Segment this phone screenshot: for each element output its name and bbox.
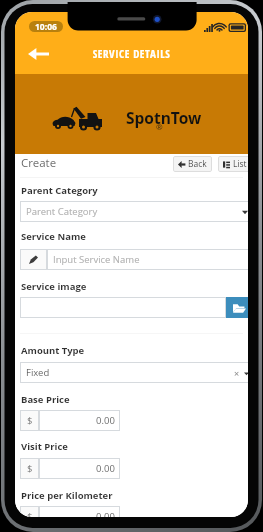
button[interactable]: Back xyxy=(25,41,51,67)
staticText: 0.00 xyxy=(96,510,115,517)
staticText: Parent Category xyxy=(26,205,98,218)
staticText: 0.00 xyxy=(96,414,115,427)
button[interactable]: Fixed xyxy=(20,362,248,383)
button[interactable] xyxy=(20,297,226,318)
staticText: Visit Price xyxy=(21,440,68,453)
staticText: 0.00 xyxy=(96,462,115,475)
staticText: Create xyxy=(21,155,57,171)
staticText: 10:06 xyxy=(35,21,57,32)
button[interactable]: 0.00 xyxy=(39,458,120,479)
staticText: Price per Kilometer xyxy=(21,489,113,502)
staticText: Back xyxy=(188,158,207,170)
button[interactable]: Browse file xyxy=(226,297,248,318)
staticText: SERVICE DETAILS xyxy=(72,46,191,61)
staticText: Amount Type xyxy=(21,344,85,357)
button[interactable]: 0.00 xyxy=(39,410,120,431)
staticText: Parent Category xyxy=(21,184,98,197)
staticText: List xyxy=(233,158,247,170)
button[interactable]: Input Service Name xyxy=(47,249,248,270)
staticText: Service Name xyxy=(21,230,86,243)
staticText: $ xyxy=(27,462,33,475)
staticText: Base Price xyxy=(21,393,70,406)
button[interactable]: 0.00 xyxy=(39,506,120,517)
staticText: $ xyxy=(27,414,33,427)
staticText: Fixed xyxy=(26,366,50,379)
staticText: Service image xyxy=(21,280,87,293)
button[interactable]: Back xyxy=(173,156,212,172)
button[interactable]: Parent Category xyxy=(20,201,248,222)
staticText: $ xyxy=(27,510,33,517)
staticText: × xyxy=(234,367,240,379)
staticText: ® xyxy=(156,121,163,132)
staticText: Input Service Name xyxy=(53,253,140,266)
staticText: SpotnTow xyxy=(126,107,202,128)
button[interactable]: List xyxy=(218,156,248,172)
